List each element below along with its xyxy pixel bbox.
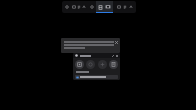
button[interactable]: Expand	[111, 54, 114, 57]
button[interactable]: Action 2	[98, 60, 107, 69]
button[interactable]: Tool 6	[122, 2, 127, 12]
button[interactable]: Close	[114, 40, 118, 44]
button[interactable]: Action 1	[86, 60, 95, 69]
button[interactable]: Action 3	[109, 60, 118, 69]
button[interactable]	[75, 75, 118, 79]
button[interactable]: Tool 3	[81, 2, 86, 12]
button[interactable]: Tool 2	[76, 2, 81, 12]
button[interactable]: Tool 5	[116, 2, 121, 12]
button[interactable]: Action 0	[75, 60, 84, 69]
button[interactable]: Tool 0	[64, 2, 69, 12]
button[interactable]: Close panel	[115, 54, 118, 57]
button[interactable]: Selected tool group	[96, 1, 113, 13]
button[interactable]: Tool 7	[128, 2, 133, 12]
button[interactable]: Tool 1	[71, 2, 76, 12]
button[interactable]: Tool 4	[89, 2, 94, 12]
